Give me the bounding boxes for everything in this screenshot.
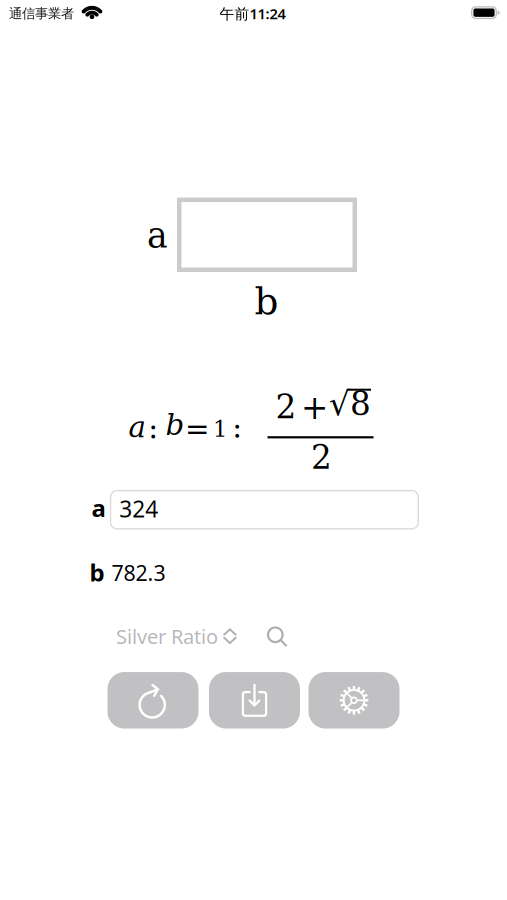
button[interactable]: Reset <box>107 672 198 728</box>
button[interactable]: Save <box>209 672 300 728</box>
button[interactable]: Settings <box>308 672 399 728</box>
staticText: 1 <box>213 416 227 442</box>
staticText: a <box>147 215 168 256</box>
staticText: Silver Ratio <box>116 623 218 650</box>
staticText: b <box>165 408 184 442</box>
staticText: a <box>91 492 105 524</box>
staticText: a <box>128 410 145 444</box>
staticText: b <box>254 280 278 323</box>
staticText: 通信事業者 <box>9 5 74 22</box>
staticText: : <box>232 410 242 444</box>
staticText: = <box>185 412 210 446</box>
staticText: 782.3 <box>111 558 165 587</box>
button[interactable]: Search <box>267 626 287 646</box>
staticText: 324 <box>119 493 158 524</box>
staticText: 午前11:24 <box>219 4 285 23</box>
button[interactable]: Silver Ratio <box>116 623 237 650</box>
staticText: b <box>89 556 104 588</box>
staticText: 2 <box>311 438 332 476</box>
staticText: √8 <box>329 385 371 423</box>
staticText: + <box>301 389 328 427</box>
staticText: : <box>148 411 158 445</box>
staticText: 2 <box>275 388 296 426</box>
